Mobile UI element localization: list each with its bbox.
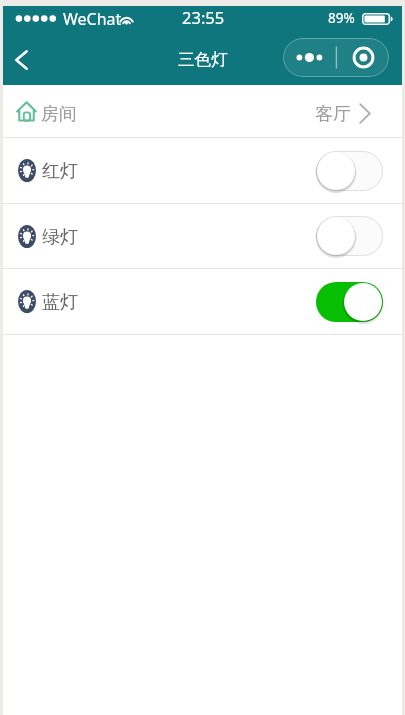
- staticText: 房间: [41, 103, 77, 126]
- button[interactable]: Back: [3, 42, 39, 78]
- staticText: 绿灯: [42, 226, 78, 249]
- button[interactable]: Switch off: [316, 151, 383, 191]
- button[interactable]: Switch off: [316, 216, 383, 256]
- staticText: 三色灯: [178, 49, 228, 70]
- staticText: WeChat: [63, 8, 122, 30]
- button[interactable]: 房间: [3, 85, 402, 137]
- button[interactable]: Menu: [283, 38, 389, 77]
- staticText: 红灯: [42, 160, 78, 183]
- staticText: 客厅: [315, 103, 351, 126]
- staticText: 89%: [328, 9, 355, 27]
- staticText: 蓝灯: [42, 291, 78, 314]
- button[interactable]: 红灯: [3, 138, 402, 203]
- button[interactable]: 蓝灯: [3, 269, 402, 334]
- button[interactable]: 绿灯: [3, 204, 402, 268]
- staticText: 23:55: [182, 6, 225, 28]
- button[interactable]: Switch on: [316, 282, 383, 322]
